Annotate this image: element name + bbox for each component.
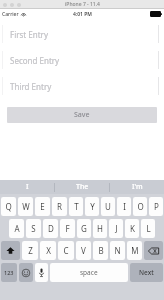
staticText: L: [146, 223, 151, 234]
button[interactable]: First Entry: [0, 21, 164, 47]
staticText: Z: [28, 245, 33, 256]
staticText: N: [114, 245, 121, 256]
button[interactable]: W: [18, 197, 33, 216]
button[interactable]: I: [117, 197, 131, 216]
staticText: J: [115, 223, 118, 234]
button[interactable]: Shift: [1, 241, 20, 260]
staticText: iPhone 7 - 11.4: [65, 1, 100, 8]
button[interactable]: Q: [1, 197, 16, 216]
staticText: S: [31, 223, 36, 234]
button[interactable]: R: [52, 197, 67, 216]
staticText: The: [76, 182, 89, 192]
button[interactable]: Dictate: [35, 263, 48, 282]
button[interactable]: Window control: [10, 3, 14, 7]
staticText: 123: [4, 269, 14, 276]
staticText: O: [137, 201, 144, 212]
staticText: Y: [90, 201, 95, 212]
button[interactable]: Backspace: [144, 241, 163, 260]
button[interactable]: T: [69, 197, 83, 216]
button[interactable]: Y: [85, 197, 99, 216]
button[interactable]: U: [101, 197, 115, 216]
button[interactable]: D: [43, 219, 58, 238]
button[interactable]: S: [26, 219, 41, 238]
staticText: P: [154, 201, 159, 212]
staticText: 4:01 PM: [73, 11, 92, 18]
staticText: V: [81, 245, 86, 256]
staticText: space: [80, 268, 98, 277]
button[interactable]: A: [9, 219, 24, 238]
staticText: T: [74, 201, 79, 212]
button[interactable]: V: [76, 241, 91, 260]
button[interactable]: P: [149, 197, 163, 216]
staticText: Second Entry: [10, 55, 60, 66]
button[interactable]: Third Entry: [0, 73, 164, 99]
button[interactable]: The: [55, 180, 109, 194]
button[interactable]: 123: [1, 263, 17, 282]
button[interactable]: B: [93, 241, 108, 260]
button[interactable]: G: [77, 219, 91, 238]
button[interactable]: space: [50, 263, 128, 282]
button[interactable]: Save: [7, 107, 157, 123]
button[interactable]: Second Entry: [0, 47, 164, 73]
button[interactable]: L: [141, 219, 155, 238]
button[interactable]: F: [60, 219, 75, 238]
staticText: G: [81, 223, 87, 234]
button[interactable]: M: [127, 241, 142, 260]
staticText: E: [40, 201, 45, 212]
button[interactable]: E: [35, 197, 50, 216]
button[interactable]: Next: [130, 263, 163, 282]
staticText: U: [105, 201, 111, 212]
button[interactable]: Z: [22, 241, 38, 260]
button[interactable]: K: [125, 219, 139, 238]
staticText: I'm: [132, 182, 143, 192]
button[interactable]: C: [58, 241, 74, 260]
staticText: Save: [74, 110, 90, 120]
button[interactable]: O: [133, 197, 147, 216]
staticText: X: [46, 245, 51, 256]
staticText: R: [57, 201, 62, 212]
staticText: Q: [5, 201, 12, 212]
button[interactable]: N: [110, 241, 125, 260]
button[interactable]: Emoji: [19, 263, 33, 282]
staticText: Third Entry: [10, 81, 52, 92]
staticText: A: [14, 223, 20, 234]
staticText: F: [65, 223, 70, 234]
staticText: M: [131, 245, 139, 256]
button[interactable]: H: [93, 219, 107, 238]
staticText: H: [97, 223, 103, 234]
staticText: D: [48, 223, 54, 234]
button[interactable]: Window control: [3, 3, 7, 7]
staticText: B: [98, 245, 104, 256]
staticText: I: [123, 201, 126, 212]
button[interactable]: J: [109, 219, 123, 238]
staticText: First Entry: [10, 29, 48, 40]
staticText: C: [63, 245, 69, 256]
staticText: W: [22, 201, 30, 212]
staticText: Next: [139, 268, 154, 277]
button[interactable]: I'm: [110, 180, 164, 194]
button[interactable]: X: [40, 241, 56, 260]
button[interactable]: Window control: [17, 3, 21, 7]
staticText: I: [26, 182, 29, 192]
staticText: Carrier: [2, 11, 19, 18]
button[interactable]: I: [0, 180, 54, 194]
staticText: K: [130, 223, 135, 234]
